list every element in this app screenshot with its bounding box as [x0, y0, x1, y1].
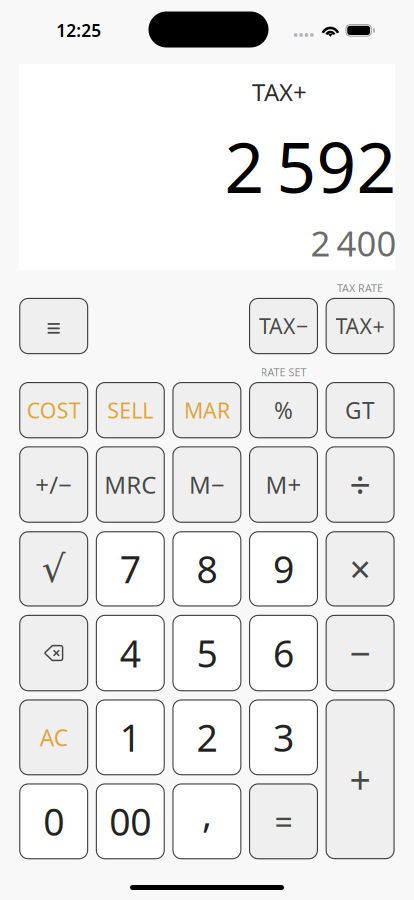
button[interactable]: 5 [172, 615, 241, 691]
staticText: ÷ [350, 460, 371, 509]
button[interactable]: TAX− [249, 298, 318, 354]
staticText: + [350, 754, 371, 804]
staticText: − [350, 628, 371, 678]
staticText: × [350, 544, 371, 594]
staticText: 4 [120, 628, 141, 678]
staticText: SELL [107, 396, 153, 424]
staticText: 12:25 [56, 19, 101, 42]
staticText: 2 592 [224, 120, 396, 212]
button[interactable]: − [326, 615, 395, 691]
staticText: 0 [43, 797, 64, 846]
button[interactable]: MAR [172, 382, 241, 438]
staticText: % [274, 395, 293, 425]
button[interactable]: Backspace [19, 615, 88, 691]
staticText: GT [345, 395, 375, 425]
staticText: 5 [196, 628, 217, 678]
button[interactable]: AC [19, 699, 88, 775]
button[interactable]: √ [19, 531, 88, 606]
button[interactable]: 9 [249, 531, 318, 606]
staticText: 2 400 [310, 220, 396, 266]
staticText: TAX+ [252, 76, 307, 108]
button[interactable]: 3 [249, 699, 318, 775]
staticText: 7 [120, 544, 141, 594]
staticText: TAX− [259, 312, 308, 340]
staticText: M+ [265, 469, 301, 500]
button[interactable]: 0 [19, 783, 88, 859]
staticText: MRC [104, 469, 156, 500]
button[interactable]: M+ [249, 446, 318, 523]
staticText: 2 [196, 713, 217, 762]
button[interactable]: + [326, 699, 395, 859]
button[interactable]: M− [172, 446, 241, 523]
button[interactable]: 1 [96, 699, 165, 775]
staticText: AC [40, 722, 68, 752]
staticText: MAR [184, 396, 230, 424]
button[interactable]: ÷ [326, 446, 395, 523]
button[interactable]: % [249, 382, 318, 438]
button[interactable]: +/− [19, 446, 88, 523]
staticText: 6 [273, 628, 294, 678]
button[interactable]: , [172, 783, 241, 859]
staticText: , [202, 789, 212, 838]
button[interactable]: 00 [96, 783, 165, 859]
staticText: 3 [273, 713, 294, 762]
button[interactable]: GT [326, 382, 395, 438]
staticText: 1 [120, 713, 141, 762]
staticText: TAX RATE [337, 281, 383, 295]
button[interactable]: 7 [96, 531, 165, 606]
staticText: COST [27, 396, 81, 424]
button[interactable]: MRC [96, 446, 165, 523]
staticText: M− [189, 469, 225, 500]
button[interactable]: 4 [96, 615, 165, 691]
button[interactable]: 8 [172, 531, 241, 606]
staticText: 9 [273, 544, 294, 594]
staticText: +/− [35, 469, 72, 500]
staticText: 8 [196, 544, 217, 594]
staticText: √ [42, 548, 66, 590]
button[interactable]: = [249, 783, 318, 859]
staticText: TAX+ [336, 312, 385, 340]
button[interactable]: 2 [172, 699, 241, 775]
button[interactable]: × [326, 531, 395, 606]
button[interactable]: SELL [96, 382, 165, 438]
button[interactable]: 6 [249, 615, 318, 691]
staticText: RATE SET [260, 365, 306, 379]
staticText: 00 [109, 797, 151, 846]
button[interactable]: Menu [19, 298, 88, 354]
button[interactable]: TAX+ [326, 298, 395, 354]
button[interactable]: COST [19, 382, 88, 438]
staticText: = [274, 800, 292, 843]
